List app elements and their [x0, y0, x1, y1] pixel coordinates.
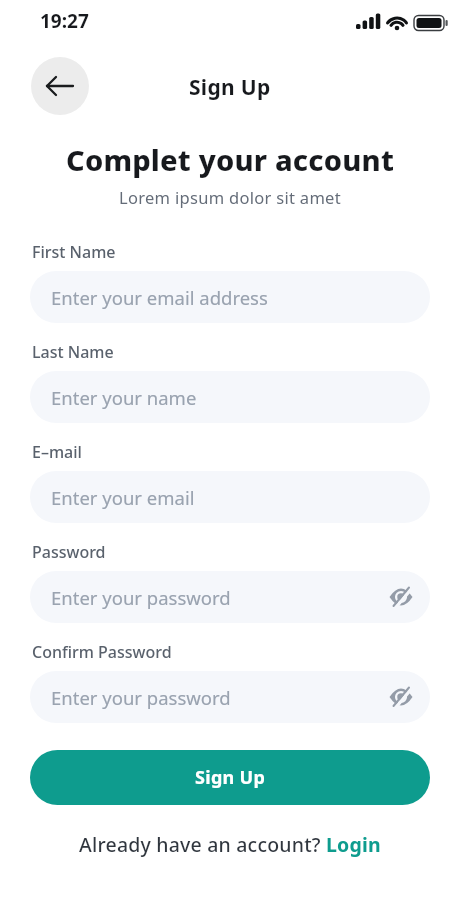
- staticText: Password: [32, 541, 106, 563]
- staticText: Confirm Password: [32, 641, 172, 663]
- staticText: Sign Up: [195, 765, 266, 790]
- staticText: Lorem ipsum dolor sit amet: [119, 186, 341, 208]
- button[interactable]: Enter your password: [30, 571, 430, 623]
- button[interactable]: Enter your password: [30, 671, 430, 723]
- button[interactable]: Enter your email address: [30, 271, 430, 323]
- staticText: Already have an account?: [79, 831, 326, 858]
- staticText: Enter your password: [51, 585, 231, 610]
- staticText: First Name: [32, 241, 116, 263]
- staticText: Enter your email: [51, 485, 195, 510]
- staticText: Enter your name: [51, 385, 197, 410]
- button[interactable]: Enter your name: [30, 371, 430, 423]
- button[interactable]: Enter your email: [30, 471, 430, 523]
- staticText: Last Name: [32, 341, 114, 363]
- staticText: 19:27: [40, 8, 89, 34]
- staticText: Sign Up: [189, 73, 271, 102]
- staticText: E–mail: [32, 441, 82, 463]
- button[interactable]: Login: [326, 831, 381, 858]
- staticText: Complet your account: [66, 140, 395, 179]
- button[interactable]: [31, 57, 89, 115]
- staticText: Enter your email address: [51, 285, 268, 310]
- button[interactable]: Sign Up: [30, 750, 430, 805]
- staticText: Enter your password: [51, 685, 231, 710]
